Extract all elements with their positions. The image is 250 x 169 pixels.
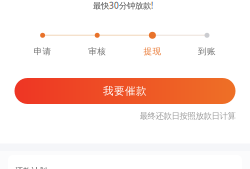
staticText: 最终还款日按照放款日计算 <box>139 111 235 121</box>
staticText: 提现 <box>143 46 161 57</box>
staticText: 最快30分钟放款! <box>93 0 153 11</box>
staticText: 我要催款 <box>103 84 147 98</box>
button[interactable]: 我要催款 <box>14 78 235 104</box>
staticText: 还款计划 <box>15 166 47 169</box>
staticText: 到账 <box>198 46 216 57</box>
staticText: 申请 <box>34 46 52 57</box>
staticText: 审核 <box>88 46 106 57</box>
